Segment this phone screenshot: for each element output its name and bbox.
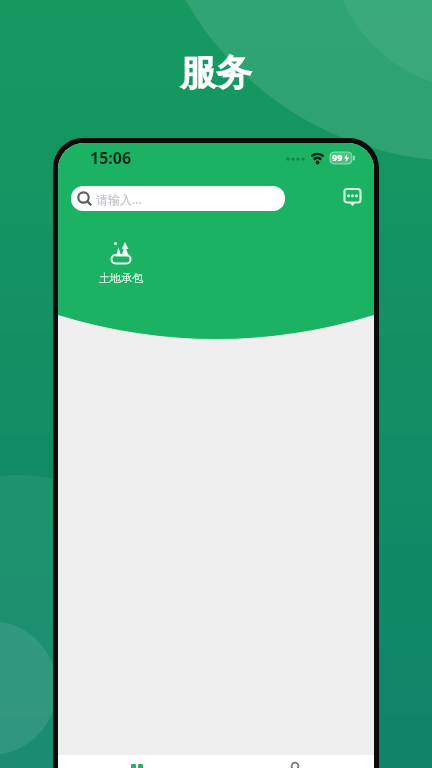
staticText: 99	[332, 151, 343, 163]
staticText: 服务	[180, 50, 252, 95]
button[interactable]: 土地承包	[96, 240, 146, 285]
button[interactable]	[58, 755, 216, 768]
button[interactable]	[344, 188, 361, 208]
staticText: 15:06	[90, 147, 132, 169]
button[interactable]: 请输入...	[71, 186, 285, 211]
button[interactable]	[216, 755, 374, 768]
staticText: 土地承包	[99, 271, 143, 285]
staticText: 请输入...	[96, 191, 142, 207]
